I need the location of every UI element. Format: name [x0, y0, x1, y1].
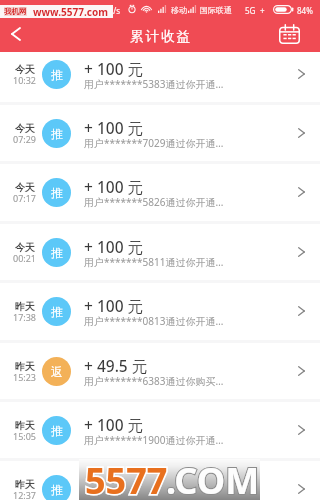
- staticText: 5577: [85, 456, 168, 500]
- staticText: 今天: [15, 63, 35, 76]
- staticText: + 49.5 元: [84, 355, 148, 376]
- staticText: 昨天: [15, 419, 35, 432]
- staticText: + 100 元: [84, 295, 144, 316]
- staticText: 用户*******5826通过你开通…: [84, 195, 224, 209]
- staticText: 推: [51, 423, 63, 438]
- staticText: 累计收益: [129, 28, 191, 45]
- staticText: +: [260, 5, 265, 16]
- button[interactable]: 今天: [0, 105, 320, 162]
- button[interactable]: 昨天: [0, 402, 320, 459]
- staticText: 昨天: [15, 360, 35, 373]
- staticText: 07:17: [13, 192, 37, 204]
- staticText: 用户*******6383通过你购买…: [84, 374, 224, 388]
- staticText: 今天: [15, 122, 35, 135]
- button[interactable]: 昨天: [0, 343, 320, 400]
- staticText: 推: [51, 126, 63, 141]
- staticText: 12:37: [13, 489, 37, 500]
- button[interactable]: 今天: [0, 164, 320, 221]
- staticText: + 100 元: [84, 414, 144, 435]
- staticText: 昨天: [15, 300, 35, 313]
- button[interactable]: 今天: [0, 46, 320, 103]
- staticText: 00:21: [13, 252, 37, 264]
- staticText: 15:05: [13, 430, 37, 442]
- staticText: 今天: [15, 181, 35, 194]
- staticText: .COM: [166, 456, 260, 500]
- staticText: 用户*******7029通过你开通…: [84, 136, 224, 150]
- staticText: 移动: [171, 5, 187, 15]
- staticText: www.5577.com: [33, 5, 108, 18]
- staticText: 5577: [85, 456, 168, 500]
- button[interactable]: 今天: [0, 224, 320, 281]
- staticText: 10:32: [13, 74, 37, 86]
- staticText: 推: [51, 67, 63, 82]
- staticText: .COM: [166, 456, 260, 500]
- staticText: + 100 元: [84, 473, 144, 494]
- staticText: 84%: [297, 5, 313, 16]
- staticText: 5G: [245, 5, 256, 16]
- staticText: 国际联通: [200, 5, 232, 15]
- staticText: + 100 元: [84, 117, 144, 138]
- button[interactable]: Back: [0, 17, 33, 51]
- button[interactable]: 昨天: [0, 283, 320, 340]
- staticText: 用户*******5383通过你开通…: [84, 77, 224, 91]
- staticText: 用户*******0813通过你开通…: [84, 314, 224, 328]
- staticText: 推: [51, 245, 63, 260]
- staticText: 15:23: [13, 371, 37, 383]
- staticText: 推: [51, 482, 63, 497]
- button[interactable]: Calendar: [276, 21, 302, 47]
- staticText: 返: [51, 364, 63, 379]
- staticText: 07:29: [13, 133, 37, 145]
- staticText: 用户*******1900通过你开通…: [84, 433, 224, 447]
- staticText: + 100 元: [84, 176, 144, 197]
- staticText: 推: [51, 185, 63, 200]
- staticText: + 100 元: [84, 236, 144, 257]
- staticText: 用户*******5811通过你开通…: [84, 255, 224, 269]
- staticText: 我机网: [4, 7, 27, 16]
- staticText: 17:38: [13, 311, 37, 323]
- staticText: 今天: [15, 241, 35, 254]
- staticText: + 100 元: [84, 58, 144, 79]
- staticText: 推: [51, 304, 63, 319]
- staticText: 昨天: [15, 478, 35, 491]
- staticText: 用户*******2130通过你开通…: [84, 492, 224, 500]
- staticText: 1.2K/s: [97, 5, 121, 16]
- button[interactable]: 昨天: [0, 461, 320, 500]
